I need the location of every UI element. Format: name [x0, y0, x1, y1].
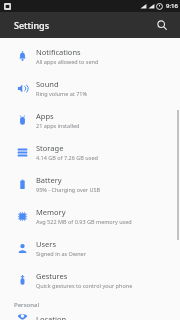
button[interactable]: Memory — [0, 200, 180, 232]
staticText: Apps — [36, 111, 54, 121]
staticText: Users — [36, 239, 56, 249]
button[interactable]: Gestures — [0, 264, 180, 296]
staticText: Notifications — [36, 47, 81, 57]
staticText: All apps allowed to send — [36, 58, 99, 65]
staticText: Ring volume at 71% — [36, 90, 88, 97]
staticText: Location — [36, 314, 67, 320]
staticText: Sound — [36, 79, 59, 89]
staticText: 21 apps installed — [36, 122, 80, 129]
button[interactable]: Search — [152, 15, 172, 35]
button[interactable]: Sound — [0, 72, 180, 104]
staticText: Storage — [36, 143, 64, 153]
staticText: Signed in as Owner — [36, 250, 86, 257]
button[interactable]: Battery — [0, 168, 180, 200]
staticText: Battery — [36, 175, 62, 185]
staticText: Quick gestures to control your phone — [36, 282, 133, 289]
staticText: 9:16 — [166, 2, 178, 10]
button[interactable]: Users — [0, 232, 180, 264]
button[interactable]: Notifications — [0, 40, 180, 72]
staticText: Personal — [14, 301, 40, 309]
staticText: Avg 522 MB of 0.93 GB memory used — [36, 218, 132, 225]
button[interactable]: Location — [0, 314, 180, 320]
staticText: 4.14 GB of 7.26 GB used — [36, 154, 98, 161]
staticText: Memory — [36, 207, 66, 217]
staticText: Settings — [14, 19, 50, 31]
button[interactable]: Storage — [0, 136, 180, 168]
staticText: 95% - Charging over USB — [36, 186, 101, 193]
staticText: Gestures — [36, 271, 68, 281]
button[interactable]: Apps — [0, 104, 180, 136]
